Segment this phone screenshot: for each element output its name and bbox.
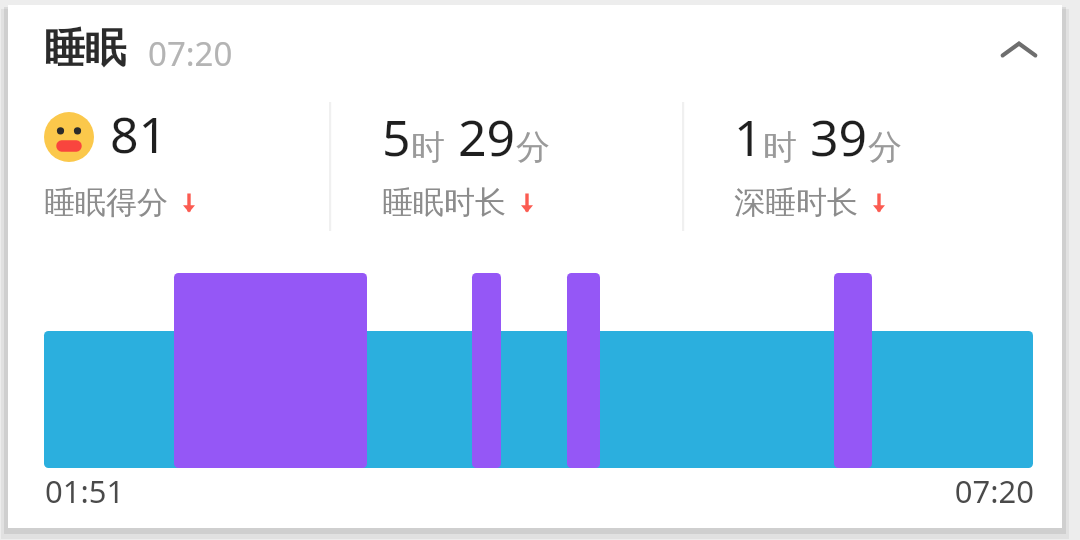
- button[interactable]: 01:51: [8, 248, 1062, 483]
- button[interactable]: 1: [734, 97, 1024, 222]
- staticText: 睡眠时长: [382, 183, 506, 222]
- staticText: 时: [411, 126, 445, 169]
- staticText: 07:20: [148, 31, 233, 76]
- button[interactable]: 5: [382, 97, 672, 222]
- staticText: 睡眠: [44, 23, 126, 75]
- staticText: 时: [763, 126, 797, 169]
- staticText: 分: [868, 126, 902, 169]
- staticText: 深睡时长: [734, 183, 858, 222]
- staticText: 睡眠得分: [44, 183, 168, 222]
- button[interactable]: 81: [44, 97, 329, 222]
- staticText: 分: [516, 126, 550, 169]
- staticText: 07:20: [8, 470, 1034, 512]
- staticText: 81: [110, 100, 168, 168]
- staticText: 01:51: [45, 470, 125, 512]
- button[interactable]: Collapse: [976, 8, 1062, 94]
- staticText: 29: [458, 103, 516, 171]
- staticText: 1: [734, 103, 763, 171]
- staticText: 5: [382, 103, 411, 171]
- staticText: 39: [810, 103, 868, 171]
